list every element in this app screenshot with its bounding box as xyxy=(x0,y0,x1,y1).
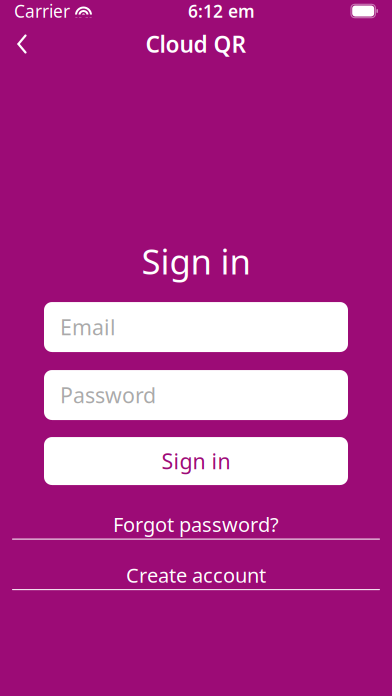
button[interactable]: Sign in xyxy=(44,437,348,485)
staticText: Sign in xyxy=(161,447,230,475)
staticText: 6:12 em xyxy=(188,0,255,22)
staticText: Password xyxy=(60,381,156,409)
staticText: Carrier xyxy=(14,0,70,22)
staticText: Create account xyxy=(126,562,266,588)
staticText: Forgot password? xyxy=(113,511,279,538)
button[interactable]: Create account xyxy=(0,556,392,596)
button[interactable]: Forgot password? xyxy=(0,505,392,546)
staticText: Email xyxy=(60,313,116,341)
button[interactable]: Back xyxy=(0,22,44,66)
staticText: Cloud QR xyxy=(145,29,246,59)
staticText: Sign in xyxy=(141,238,250,284)
